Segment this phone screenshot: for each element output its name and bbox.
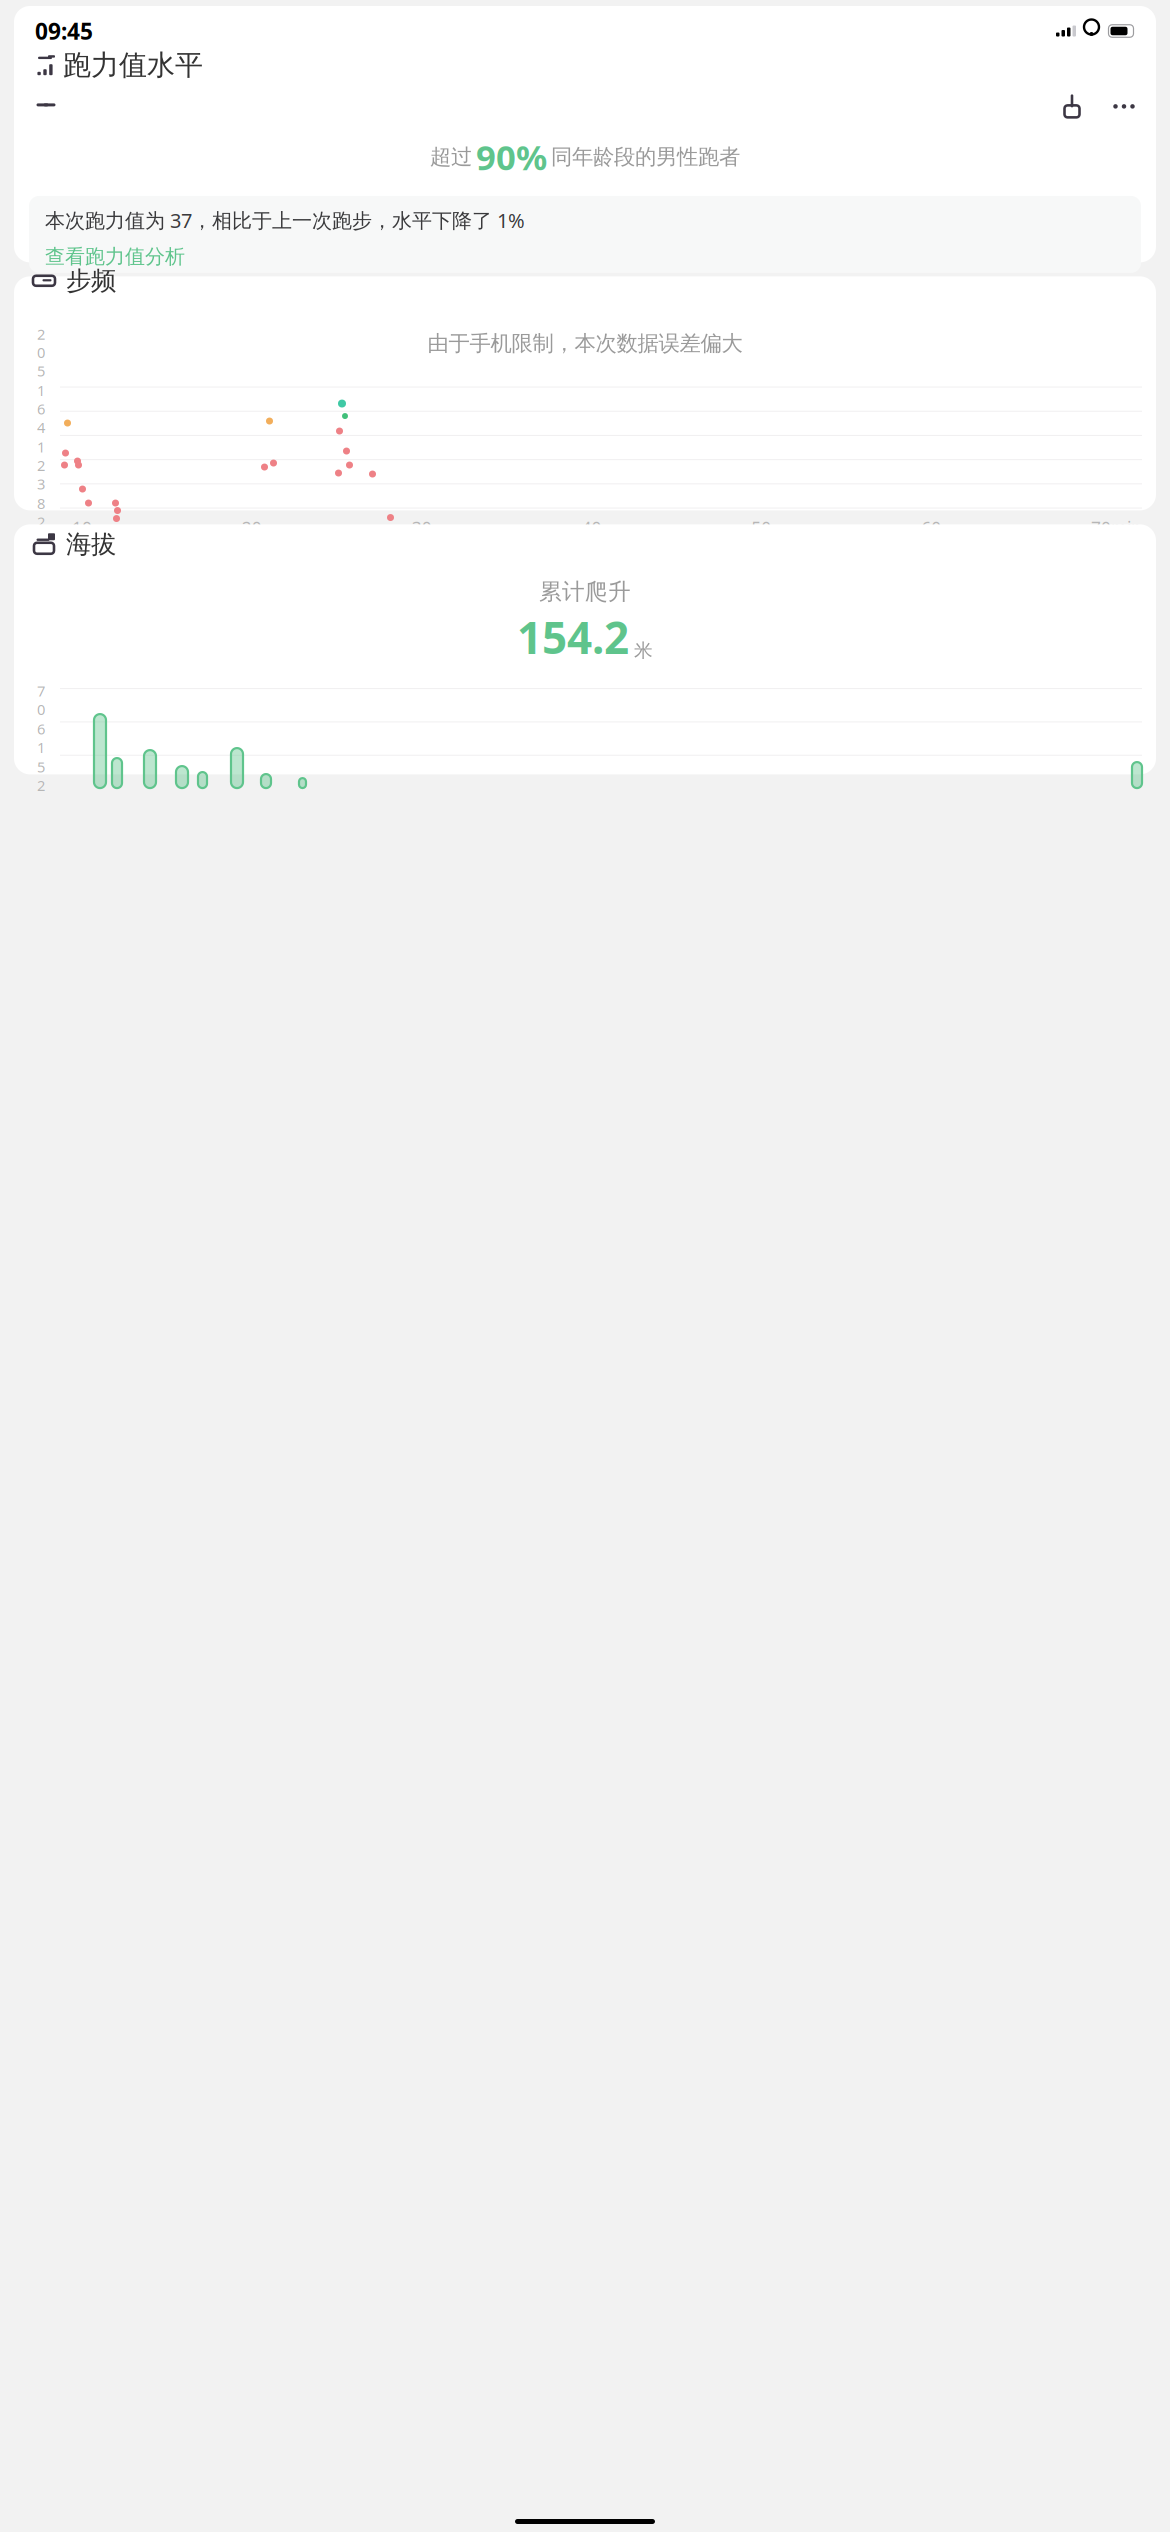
staticText: 70min	[1091, 516, 1142, 539]
staticText: 查看跑力值分析	[45, 244, 185, 269]
staticText: 2	[37, 512, 45, 531]
staticText: 8	[37, 493, 45, 513]
staticText: 超过	[430, 144, 472, 170]
staticText: 由于手机限制，本次数据误差偏大	[427, 330, 742, 356]
staticText: 7	[37, 681, 45, 701]
staticText: 4	[37, 531, 45, 551]
staticText: 154.2	[517, 608, 629, 666]
staticText: 累计爬升	[539, 578, 631, 606]
staticText: 3	[37, 474, 45, 493]
staticText: 海拔	[66, 529, 116, 560]
staticText: 30	[412, 516, 432, 539]
staticText: 5	[37, 361, 45, 381]
button[interactable]: 更多	[1102, 84, 1146, 128]
staticText: 09:45	[35, 16, 93, 46]
staticText: 步频	[66, 265, 116, 296]
staticText: 10	[72, 516, 92, 539]
staticText: 50	[751, 516, 771, 539]
staticText: 米	[634, 639, 653, 662]
staticText: 40	[581, 516, 601, 539]
staticText: 1	[37, 550, 45, 569]
staticText: 60	[921, 516, 941, 539]
staticText: 5	[37, 757, 45, 777]
button[interactable]: 分享	[1050, 84, 1094, 128]
staticText: 4	[37, 418, 45, 437]
staticText: 6	[37, 719, 45, 739]
staticText: 2	[37, 455, 45, 475]
staticText: 2	[37, 775, 45, 795]
staticText: 6	[37, 399, 45, 419]
staticText: 同年龄段的男性跑者	[551, 144, 740, 170]
staticText: 0	[37, 343, 45, 362]
staticText: 1	[37, 381, 45, 400]
button[interactable]: 本次跑力值为 37，相比于上一次跑步，水平下降了 1%	[29, 196, 1141, 273]
staticText: 20	[242, 516, 262, 539]
staticText: 跑力值水平	[63, 48, 203, 82]
staticText: 1	[37, 437, 45, 457]
button[interactable]: 收起	[24, 84, 68, 128]
staticText: 90%	[476, 134, 547, 180]
staticText: 2	[37, 324, 45, 344]
staticText: 本次跑力值为 37，相比于上一次跑步，水平下降了 1%	[45, 207, 525, 233]
staticText: 1	[37, 738, 45, 757]
staticText: 0	[37, 700, 45, 719]
